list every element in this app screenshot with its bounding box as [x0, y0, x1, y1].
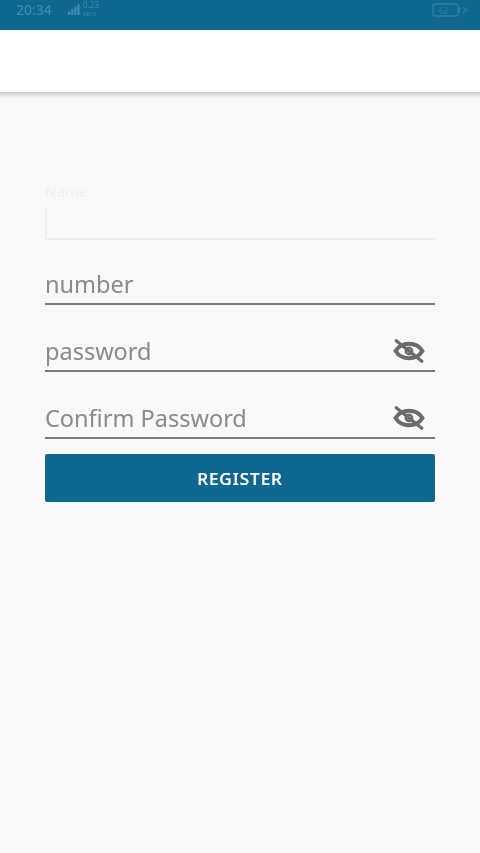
button[interactable]: REGISTER	[45, 454, 435, 502]
staticText: 62	[439, 5, 449, 16]
staticText: Confirm Password	[45, 402, 247, 434]
button[interactable]: Toggle password visibility	[392, 334, 426, 368]
button[interactable]: number	[45, 267, 435, 301]
button[interactable]: password	[45, 334, 401, 368]
staticText: 0.23	[83, 0, 99, 10]
staticText: password	[45, 335, 152, 367]
staticText: KB/S	[83, 10, 97, 18]
button[interactable]: Confirm Password	[45, 401, 401, 435]
staticText: 20:34	[16, 0, 52, 19]
staticText: Name	[45, 181, 88, 201]
button[interactable]: Toggle password visibility	[392, 401, 426, 435]
staticText: REGISTER	[197, 467, 283, 490]
staticText: number	[45, 268, 134, 300]
